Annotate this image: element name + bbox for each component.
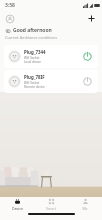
button[interactable]: Plug_78IF bbox=[4, 70, 98, 93]
staticText: Wifi Socket bbox=[24, 81, 40, 85]
button[interactable]: Profile bbox=[5, 14, 15, 24]
button[interactable]: Device bbox=[2, 198, 32, 211]
staticText: Remote device bbox=[24, 85, 45, 89]
staticText: Device bbox=[12, 206, 23, 211]
staticText: Plug_78IF bbox=[24, 74, 45, 80]
button[interactable]: Power toggle bbox=[81, 75, 94, 88]
staticText: Local device bbox=[24, 60, 41, 64]
button[interactable]: Me bbox=[70, 198, 100, 211]
button[interactable]: Add device bbox=[86, 13, 97, 24]
button[interactable]: Power toggle bbox=[81, 50, 94, 63]
staticText: Me bbox=[82, 206, 88, 211]
staticText: Good afternoon bbox=[13, 27, 52, 34]
staticText: Wifi Socket bbox=[24, 56, 40, 60]
button[interactable]: Smart bbox=[36, 198, 66, 211]
staticText: Current Ambiance conditions bbox=[5, 35, 57, 40]
staticText: Plug_7344 bbox=[24, 49, 46, 55]
button[interactable]: Plug_7344 bbox=[4, 45, 98, 68]
staticText: 3:58 bbox=[5, 2, 15, 9]
staticText: Smart bbox=[46, 206, 56, 211]
